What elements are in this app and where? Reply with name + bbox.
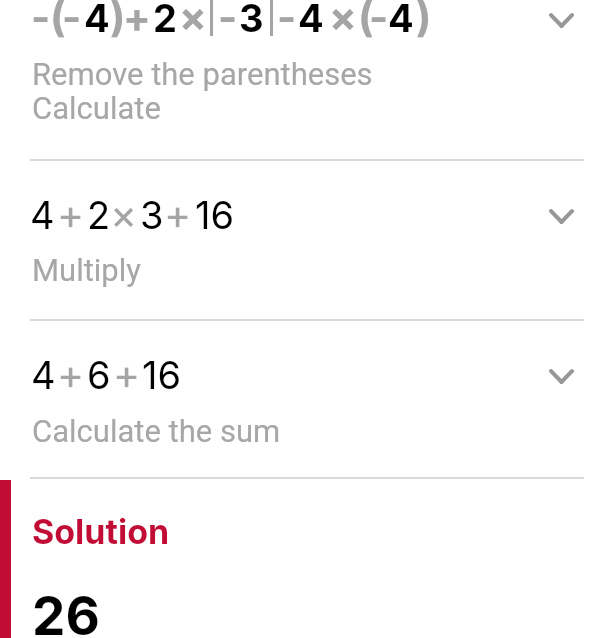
staticText: Calculate the sum: [32, 413, 281, 449]
staticText: ×: [179, 0, 207, 42]
staticText: +: [164, 189, 192, 239]
staticText: -: [62, 0, 82, 42]
staticText: 4: [31, 352, 56, 398]
staticText: (: [358, 0, 374, 42]
staticText: 26: [32, 584, 100, 638]
button[interactable]: [0, 0, 614, 159]
staticText: 4: [30, 192, 55, 238]
button[interactable]: Expand step: [533, 0, 589, 48]
staticText: +: [123, 0, 151, 42]
button[interactable]: Expand step: [533, 348, 589, 404]
staticText: 4: [84, 0, 110, 41]
staticText: ×: [329, 0, 357, 42]
staticText: Multiply: [32, 252, 141, 288]
staticText: ): [110, 0, 126, 42]
staticText: -: [218, 0, 238, 42]
staticText: Remove the parentheses: [32, 56, 373, 92]
staticText: 2: [153, 0, 177, 41]
staticText: +: [57, 349, 85, 399]
button[interactable]: [0, 160, 614, 319]
staticText: 4: [388, 0, 414, 41]
staticText: -: [369, 0, 389, 42]
button[interactable]: [0, 320, 614, 477]
button[interactable]: [0, 478, 614, 638]
staticText: (: [50, 0, 66, 42]
staticText: Solution: [32, 511, 170, 552]
button[interactable]: Expand step: [533, 188, 589, 244]
staticText: 6: [87, 352, 111, 398]
staticText: ): [416, 0, 432, 42]
staticText: ×: [110, 189, 138, 239]
staticText: 16: [195, 192, 235, 238]
staticText: +: [113, 349, 141, 399]
staticText: 4: [298, 0, 324, 41]
staticText: 2: [87, 192, 111, 238]
staticText: 3: [239, 0, 264, 41]
staticText: 16: [142, 352, 182, 398]
staticText: 3: [140, 192, 164, 238]
staticText: -: [277, 0, 297, 42]
staticText: +: [57, 189, 85, 239]
staticText: Calculate: [32, 90, 161, 126]
staticText: -: [31, 0, 51, 42]
